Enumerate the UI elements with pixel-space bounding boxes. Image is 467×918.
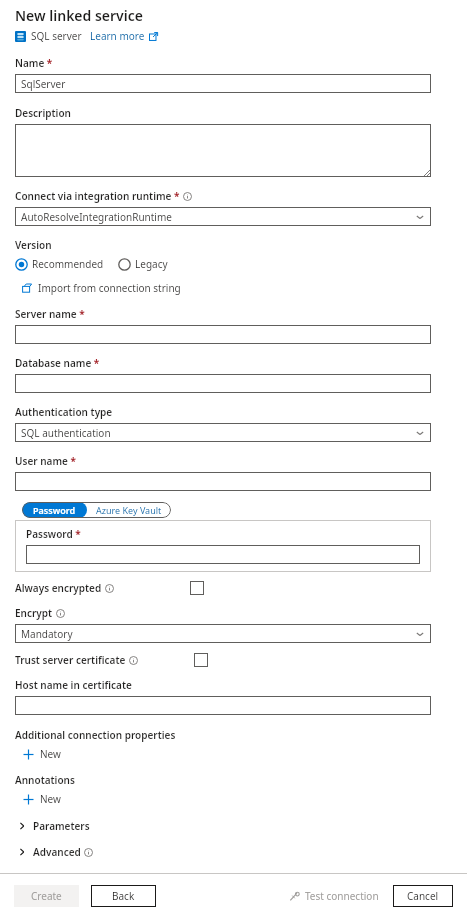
button[interactable] (15, 124, 431, 177)
staticText: Description (15, 106, 71, 120)
staticText: Server name * (15, 307, 85, 321)
button[interactable] (26, 545, 420, 564)
staticText: Annotations (15, 773, 75, 787)
button[interactable]: Import from connection string (22, 281, 181, 295)
button[interactable]: Recommended (15, 257, 104, 271)
staticText: Authentication type (15, 405, 113, 419)
staticText: Encrypt (15, 606, 53, 620)
button[interactable]: Create (14, 885, 79, 907)
button[interactable]: SqlServer (15, 74, 431, 93)
button[interactable]: Learn more (90, 29, 158, 43)
staticText: Advanced (33, 845, 81, 859)
button[interactable]: AutoResolveIntegrationRuntime (15, 207, 431, 226)
staticText: Password * (26, 527, 81, 541)
staticText: Database name * (15, 356, 100, 370)
button[interactable]: Legacy (118, 257, 168, 271)
button[interactable]: Azure Key Vault (87, 502, 171, 518)
button[interactable] (15, 696, 431, 715)
staticText: Name * (15, 56, 53, 70)
staticText: Test connection (305, 889, 379, 903)
staticText: New linked service (15, 6, 143, 25)
button[interactable] (15, 374, 431, 393)
button[interactable]: New (23, 747, 61, 761)
staticText: Import from connection string (38, 281, 181, 295)
button[interactable]: Parameters (0, 819, 467, 833)
staticText: User name * (15, 454, 76, 468)
staticText: Legacy (135, 257, 168, 271)
staticText: Additional connection properties (15, 728, 176, 742)
staticText: SqlServer (21, 77, 66, 91)
button[interactable]: Cancel (393, 885, 453, 907)
button[interactable]: SQL authentication (15, 423, 431, 442)
staticText: AutoResolveIntegrationRuntime (21, 210, 172, 224)
button[interactable]: Test connection (289, 889, 379, 903)
staticText: Create (31, 889, 62, 903)
button[interactable]: Mandatory (15, 624, 431, 643)
button[interactable]: Advanced (0, 845, 467, 859)
button[interactable] (15, 472, 431, 491)
staticText: New (40, 747, 61, 761)
staticText: Learn more (90, 29, 145, 43)
staticText: Host name in certificate (15, 678, 132, 692)
button[interactable] (15, 325, 431, 344)
staticText: Mandatory (21, 627, 73, 641)
staticText: SQL authentication (21, 426, 111, 440)
staticText: Password (33, 504, 76, 516)
staticText: Cancel (407, 889, 439, 903)
button[interactable]: Back (91, 885, 156, 907)
staticText: Version (15, 238, 52, 252)
button[interactable]: Toggle checkbox (194, 653, 208, 667)
button[interactable]: Password (22, 502, 87, 518)
staticText: Azure Key Vault (96, 504, 162, 516)
staticText: Always encrypted (15, 581, 102, 595)
staticText: Parameters (33, 819, 90, 833)
staticText: Connect via integration runtime * (15, 189, 180, 203)
staticText: Back (112, 889, 135, 903)
button[interactable]: Toggle checkbox (190, 581, 204, 595)
button[interactable]: New (23, 792, 61, 806)
staticText: SQL server (31, 29, 82, 43)
staticText: Recommended (32, 257, 104, 271)
staticText: New (40, 792, 61, 806)
staticText: Trust server certificate (15, 653, 126, 667)
